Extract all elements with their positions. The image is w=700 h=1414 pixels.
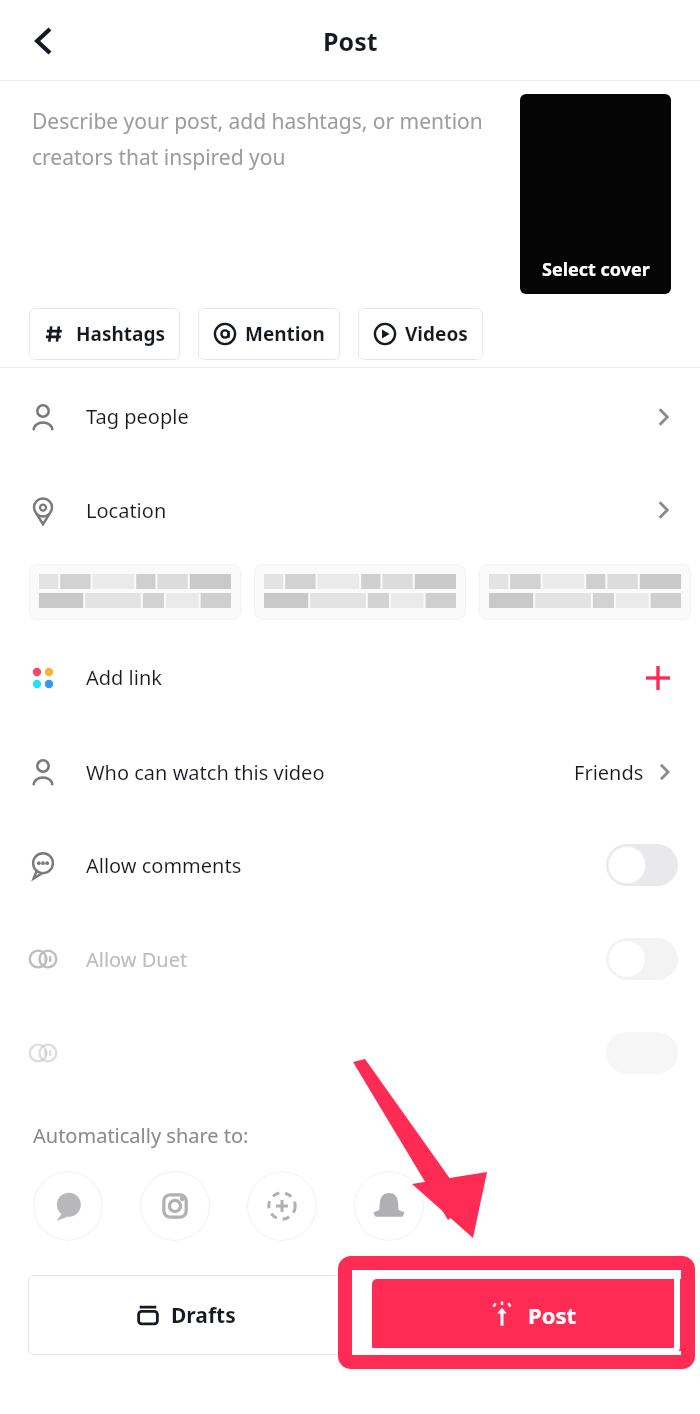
staticText: Post [528, 1300, 577, 1330]
button[interactable] [254, 564, 466, 620]
button[interactable]: Videos [358, 308, 483, 360]
button[interactable]: Mention [198, 308, 340, 360]
button[interactable]: Share to messages [33, 1171, 103, 1241]
staticText: Friends [574, 759, 644, 786]
staticText: Who can watch this video [86, 759, 574, 786]
button[interactable]: Tag people [0, 368, 700, 465]
button[interactable]: Drafts [28, 1275, 342, 1355]
staticText: Allow comments [86, 852, 606, 879]
button[interactable]: Share to Snapchat [354, 1171, 424, 1241]
button[interactable]: Location [0, 465, 700, 555]
button[interactable]: Select cover [520, 94, 671, 294]
staticText: Drafts [171, 1301, 236, 1330]
button[interactable]: Add link [638, 658, 678, 698]
button[interactable]: Post [372, 1279, 692, 1351]
button[interactable]: Share to Instagram story [247, 1171, 317, 1241]
button[interactable] [650, 758, 678, 786]
button[interactable]: Who can watch this video [0, 726, 700, 818]
button[interactable]: Hashtags [29, 308, 180, 360]
button[interactable]: Add link [0, 629, 700, 726]
button[interactable]: Describe your post, add hashtags, or men… [32, 107, 492, 171]
button[interactable] [0, 1006, 700, 1100]
button[interactable]: Allow Duet [0, 912, 700, 1006]
staticText: Tag people [86, 403, 648, 430]
button[interactable] [648, 402, 678, 432]
button[interactable]: Allow comments [0, 818, 700, 912]
staticText: Hashtags [76, 321, 165, 347]
button[interactable] [29, 564, 241, 620]
staticText: Allow Duet [86, 946, 606, 973]
button[interactable] [606, 844, 678, 886]
staticText: Post [323, 24, 378, 58]
staticText: Location [86, 497, 648, 524]
button[interactable]: Back [18, 15, 70, 67]
staticText: Select cover [542, 257, 650, 282]
staticText: Mention [245, 321, 325, 347]
button[interactable] [648, 495, 678, 525]
staticText [86, 1040, 606, 1067]
button[interactable] [479, 564, 691, 620]
staticText: Automatically share to: [33, 1122, 249, 1149]
staticText: Add link [86, 664, 638, 691]
button[interactable]: Share to Instagram [140, 1171, 210, 1241]
button[interactable] [606, 938, 678, 980]
staticText: Videos [405, 321, 468, 347]
